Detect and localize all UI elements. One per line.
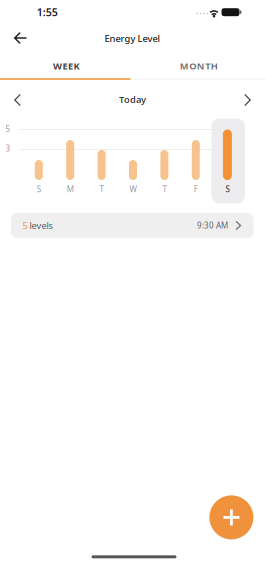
button[interactable]: Add energy level [209, 495, 253, 539]
staticText: 1:55 [37, 5, 58, 19]
button[interactable]: 5 [11, 213, 253, 238]
staticText: 5 [22, 219, 27, 232]
staticText: M [67, 184, 74, 194]
staticText: levels [27, 219, 52, 232]
staticText: S [37, 184, 41, 194]
staticText: 5 [5, 124, 10, 134]
staticText: S [225, 184, 229, 194]
staticText: T [162, 184, 166, 194]
staticText: T [100, 184, 104, 194]
button[interactable]: Back [13, 31, 27, 44]
staticText: MONTH [180, 60, 218, 72]
button[interactable]: Next week [239, 91, 255, 109]
staticText: Today [119, 93, 146, 106]
staticText: WEEK [53, 60, 79, 72]
button[interactable]: MONTH [132, 54, 265, 78]
button[interactable]: WEEK [0, 54, 132, 78]
staticText: W [129, 184, 136, 194]
staticText: 3 [5, 143, 10, 154]
button[interactable]: Previous week [9, 91, 25, 109]
staticText: Energy Level [104, 32, 160, 45]
staticText: F [194, 184, 198, 194]
staticText: 9:30 AM [197, 220, 228, 231]
